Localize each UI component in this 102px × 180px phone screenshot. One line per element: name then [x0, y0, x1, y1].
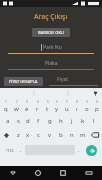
staticText: m [80, 131, 86, 139]
button[interactable]: k [77, 114, 88, 128]
button[interactable]: BARKOD OKU [32, 28, 70, 37]
staticText: s [17, 117, 20, 125]
staticText: a [6, 117, 10, 125]
staticText: Park No [43, 44, 62, 51]
staticText: t [46, 105, 49, 113]
button[interactable]: 9 [82, 98, 92, 114]
button[interactable]: x [23, 128, 33, 142]
button[interactable]: a [3, 114, 13, 128]
staticText: p [95, 105, 99, 113]
button[interactable]: Hide keyboard [76, 166, 102, 180]
button[interactable]: ?123 [2, 142, 17, 158]
button[interactable]: Voice input [92, 90, 99, 97]
staticText: ı [76, 105, 78, 113]
staticText: j [71, 117, 73, 125]
button[interactable]: Back [0, 166, 25, 180]
staticText: 6 [56, 100, 58, 104]
staticText: h [59, 117, 63, 125]
staticText: Araç Çıkışı [34, 12, 68, 22]
button[interactable]: , [17, 142, 25, 158]
button[interactable]: Enter [86, 145, 97, 156]
staticText: 7 [66, 100, 68, 104]
staticText: 1 [5, 100, 7, 104]
button[interactable]: l [88, 114, 99, 128]
button[interactable]: c [33, 128, 44, 142]
staticText: k [81, 117, 85, 125]
staticText: c [37, 131, 40, 139]
staticText: v [48, 131, 52, 139]
button[interactable]: 8 [72, 98, 82, 114]
staticText: w [14, 105, 19, 113]
staticText: o [85, 105, 89, 113]
button[interactable]: 6 [52, 98, 62, 114]
button[interactable]: j [66, 114, 77, 128]
button[interactable]: Home [25, 166, 50, 180]
button[interactable]: 4 [32, 98, 42, 114]
staticText: u [65, 105, 69, 113]
staticText: Fiyat [57, 76, 98, 83]
staticText: z [17, 131, 20, 139]
staticText: n [70, 131, 74, 139]
button[interactable]: 3 [22, 98, 32, 114]
staticText: . [78, 147, 80, 154]
staticText: 4 [37, 100, 39, 104]
button[interactable]: Backspace [88, 128, 102, 142]
staticText: q [4, 105, 8, 113]
staticText: FİYAT HESAPLA [9, 79, 38, 84]
button[interactable]: 2 [11, 98, 22, 114]
staticText: ?123 [6, 148, 14, 153]
staticText: x [26, 131, 30, 139]
staticText: r [36, 105, 39, 113]
button[interactable]: v [44, 128, 55, 142]
staticText: 5 [47, 100, 49, 104]
staticText: 8 [76, 100, 78, 104]
staticText: 3 [26, 100, 28, 104]
staticText: e [25, 105, 29, 113]
button[interactable]: 5 [42, 98, 52, 114]
staticText: , [20, 147, 22, 154]
button[interactable]: z [13, 128, 23, 142]
staticText: y [55, 105, 59, 113]
staticText: g [48, 117, 52, 125]
button[interactable]: b [55, 128, 66, 142]
staticText: b [59, 131, 63, 139]
staticText: Plaka [45, 60, 58, 67]
button[interactable]: 7 [62, 98, 72, 114]
button[interactable]: . [75, 142, 83, 158]
staticText: BARKOD OKU [38, 30, 64, 35]
button[interactable]: 0 [92, 98, 102, 114]
button[interactable]: m [77, 128, 88, 142]
button[interactable]: h [55, 114, 66, 128]
button[interactable]: g [44, 114, 55, 128]
staticText: f [37, 117, 40, 125]
button[interactable]: 1 [0, 98, 11, 114]
button[interactable]: FİYAT HESAPLA [4, 77, 43, 86]
staticText: 0 [96, 100, 98, 104]
button[interactable]: Recents [50, 166, 76, 180]
button[interactable]: s [13, 114, 23, 128]
button[interactable]: Shift [0, 128, 13, 142]
staticText: d [26, 117, 30, 125]
staticText: 9 [86, 100, 88, 104]
button[interactable]: n [66, 128, 77, 142]
staticText: l [93, 117, 95, 125]
button[interactable]: f [33, 114, 44, 128]
button[interactable]: d [23, 114, 33, 128]
staticText: 2 [16, 100, 18, 104]
